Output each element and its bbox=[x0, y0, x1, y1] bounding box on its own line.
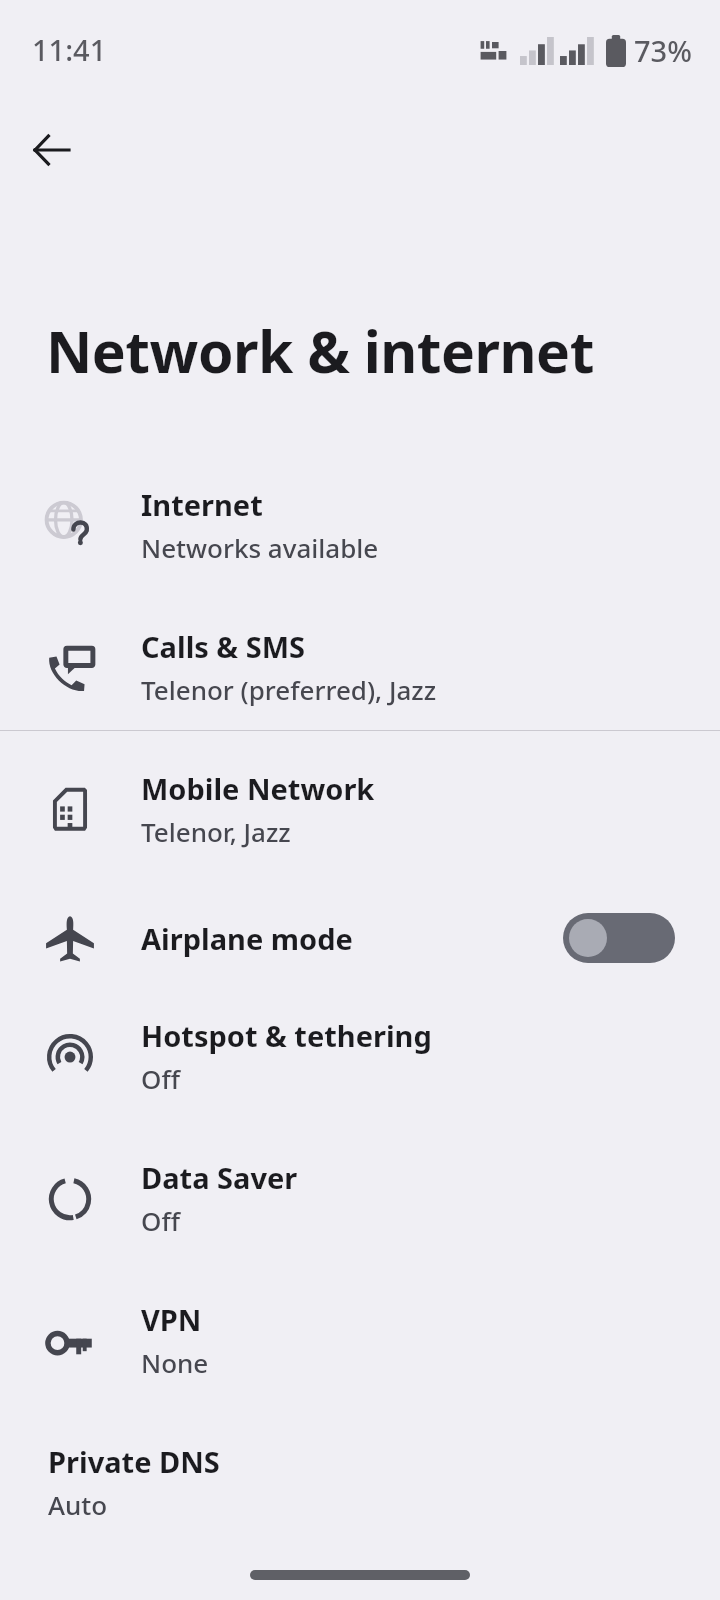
staticText: Network & internet bbox=[46, 312, 594, 390]
button[interactable]: Internet bbox=[0, 470, 720, 580]
button[interactable]: Airplane mode toggle bbox=[563, 913, 675, 963]
staticText: 11:41 bbox=[32, 30, 107, 69]
button[interactable]: VPN bbox=[0, 1285, 720, 1395]
staticText: Private DNS bbox=[48, 1442, 220, 1481]
staticText: Off bbox=[141, 1203, 180, 1238]
staticText: Airplane mode bbox=[141, 919, 353, 958]
button[interactable]: Mobile Network bbox=[0, 754, 720, 864]
staticText: 73% bbox=[634, 31, 692, 70]
staticText: Mobile Network bbox=[141, 769, 375, 808]
staticText: None bbox=[141, 1345, 209, 1380]
staticText: Off bbox=[141, 1061, 180, 1096]
staticText: Data Saver bbox=[141, 1158, 298, 1197]
staticText: Telenor (preferred), Jazz bbox=[141, 672, 437, 707]
button[interactable]: Airplane mode bbox=[0, 890, 720, 986]
staticText: Networks available bbox=[141, 530, 379, 565]
button[interactable]: Hotspot & tethering bbox=[0, 1001, 720, 1111]
staticText: VPN bbox=[141, 1300, 202, 1339]
staticText: Telenor, Jazz bbox=[141, 814, 291, 849]
button[interactable]: Calls & SMS bbox=[0, 612, 720, 722]
staticText: Calls & SMS bbox=[141, 627, 305, 666]
staticText: Hotspot & tethering bbox=[141, 1016, 432, 1055]
button[interactable]: Private DNS bbox=[0, 1427, 720, 1537]
staticText: Auto bbox=[48, 1487, 108, 1522]
staticText: Internet bbox=[141, 485, 263, 524]
button[interactable]: Back bbox=[20, 118, 84, 182]
button[interactable]: Data Saver bbox=[0, 1143, 720, 1253]
